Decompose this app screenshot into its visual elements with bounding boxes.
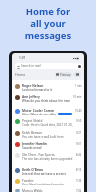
- staticText: 1:01: [19, 56, 26, 60]
- staticText: 10 min: [73, 95, 82, 99]
- staticText: Sounds great!: [22, 146, 42, 149]
- staticText: Marcus Webb: [22, 189, 43, 192]
- button[interactable]: Roger Nelson: [15, 84, 82, 91]
- button[interactable]: Jennifer Hamlin: [15, 142, 82, 149]
- staticText: 9:21: [76, 131, 82, 135]
- staticText: You can have a wall built here: [22, 135, 64, 138]
- staticText: 9:01: [76, 142, 82, 146]
- staticText: Motor Cooler Comm: [22, 109, 55, 113]
- button[interactable]: Keith O'Brian: [15, 168, 82, 175]
- button[interactable]: Compose: [73, 72, 81, 77]
- button[interactable]: Motor Cooler Comm: [15, 109, 82, 115]
- staticText: 10:45: [75, 109, 82, 113]
- button[interactable]: Project Shield: [15, 119, 82, 127]
- button[interactable]: Kelsh Benson: [15, 131, 82, 138]
- button[interactable]: Marcus Webb: [15, 189, 82, 192]
- staticText: 8:42: [76, 153, 82, 157]
- button[interactable]: Obi Chen - Fan Sports: [15, 153, 82, 164]
- staticText: Search in mail: [21, 64, 41, 68]
- staticText: Jennifer Hamlin: [22, 142, 47, 146]
- staticText: Foodies: [22, 179, 34, 183]
- button[interactable]: Search in mail: [15, 63, 82, 69]
- staticText: Kelsh Benson: [22, 131, 43, 135]
- button[interactable]: Ann Jeffery: [15, 95, 82, 105]
- staticText: Your New lunchtime favourite: [22, 183, 64, 185]
- staticText: Interval that we have a project: [22, 172, 66, 175]
- staticText: Home: [15, 72, 26, 77]
- staticText: Keith O'Brian: [22, 168, 44, 172]
- staticText: 1 min: [75, 84, 82, 88]
- staticText: What do you think about the new designs …: [22, 99, 72, 103]
- staticText: Code: Here's Good idea, 2021 01 20, who …: [22, 123, 75, 127]
- button[interactable]: Foodies: [15, 179, 82, 185]
- staticText: 7:30: [76, 179, 82, 183]
- staticText: Alice: What do you offer: [22, 113, 57, 115]
- staticText: Project Shield: [22, 119, 43, 123]
- staticText: Looking forward to it: [22, 88, 53, 91]
- staticText: Primary: [60, 73, 71, 77]
- button[interactable]: Primary: [56, 72, 71, 77]
- staticText: Ann Jeffery: [22, 95, 40, 99]
- staticText: The site has already been upgraded: [22, 157, 73, 161]
- staticText: Roger Nelson: [22, 84, 44, 88]
- staticText: Obi Chen - Fan Sports: [22, 153, 55, 157]
- staticText: Home for all your messages: [0, 5, 96, 42]
- staticText: 9:50: [76, 119, 82, 123]
- staticText: 8:10: [76, 168, 82, 172]
- staticText: 7:02: [76, 189, 82, 192]
